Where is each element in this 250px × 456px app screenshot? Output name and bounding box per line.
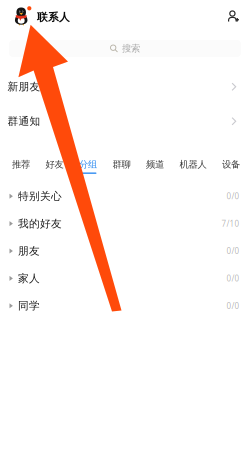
button[interactable]: Profile xyxy=(15,6,31,26)
button[interactable]: 我的好友 xyxy=(0,210,250,237)
button[interactable]: 群聊 xyxy=(112,159,130,174)
button[interactable]: 同学 xyxy=(0,292,250,319)
staticText: 推荐 xyxy=(12,159,30,170)
staticText: 家人 xyxy=(18,272,40,285)
staticText: 频道 xyxy=(146,159,164,170)
staticText: 特别关心 xyxy=(18,190,62,203)
button[interactable]: 家人 xyxy=(0,265,250,292)
button[interactable]: 搜索 xyxy=(9,40,241,57)
staticText: 0/0 xyxy=(226,246,239,256)
button[interactable]: 分组 xyxy=(79,159,97,174)
staticText: 分组 xyxy=(79,159,97,170)
staticText: 联系人 xyxy=(37,10,70,24)
button[interactable]: 设备 xyxy=(222,159,240,174)
staticText: 群聊 xyxy=(112,159,130,170)
staticText: 新朋友 xyxy=(7,80,40,93)
staticText: 0/0 xyxy=(226,300,239,311)
button[interactable]: 频道 xyxy=(146,159,164,174)
button[interactable]: Add friend xyxy=(228,10,239,22)
button[interactable]: 群通知 xyxy=(0,104,250,138)
staticText: 搜索 xyxy=(122,43,140,54)
staticText: 0/0 xyxy=(226,191,239,201)
staticText: 我的好友 xyxy=(18,217,62,230)
button[interactable]: 朋友 xyxy=(0,237,250,265)
button[interactable]: 机器人 xyxy=(179,159,206,174)
staticText: 0/0 xyxy=(226,273,239,284)
button[interactable]: 好友 xyxy=(45,159,63,174)
staticText: 好友 xyxy=(45,159,63,170)
staticText: 机器人 xyxy=(179,159,206,170)
staticText: 7/10 xyxy=(221,218,239,229)
staticText: 同学 xyxy=(18,299,40,312)
button[interactable]: 新朋友 xyxy=(0,69,250,104)
button[interactable]: 推荐 xyxy=(12,159,30,174)
staticText: 设备 xyxy=(222,159,240,170)
button[interactable]: 特别关心 xyxy=(0,182,250,210)
staticText: 朋友 xyxy=(18,244,40,257)
staticText: 群通知 xyxy=(7,115,40,128)
